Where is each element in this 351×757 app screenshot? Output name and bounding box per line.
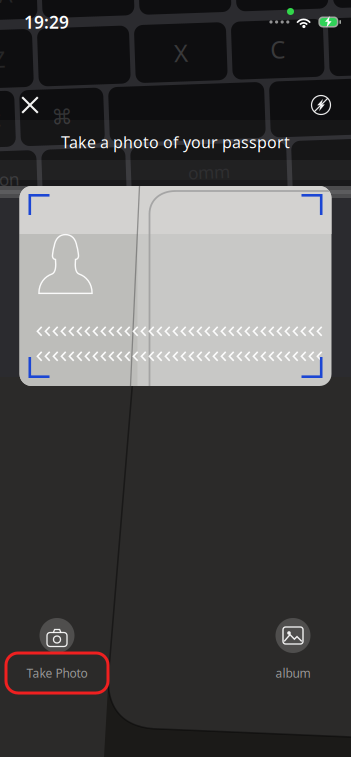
staticText: ⌘: [48, 100, 69, 124]
staticText: otion: [0, 160, 14, 183]
button[interactable]: Take Photo: [2, 618, 112, 693]
staticText: A: [0, 0, 14, 1]
button[interactable]: Close: [6, 83, 54, 127]
staticText: album: [275, 665, 310, 681]
staticText: C: [269, 35, 284, 67]
staticText: Take a photo of your passport: [61, 131, 290, 153]
button[interactable]: Toggle flash: [297, 83, 345, 127]
staticText: omm: [183, 160, 225, 183]
staticText: X: [173, 35, 187, 67]
staticText: 19:29: [24, 10, 69, 33]
staticText: Z: [0, 36, 4, 66]
button[interactable]: album: [238, 618, 348, 693]
staticText: Take Photo: [26, 665, 87, 681]
